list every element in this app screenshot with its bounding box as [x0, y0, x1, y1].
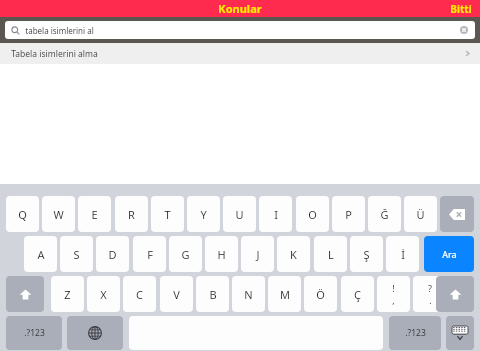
button[interactable]: Ö	[304, 276, 337, 312]
button[interactable]: H	[205, 236, 238, 272]
staticText: C	[136, 287, 143, 302]
staticText: A	[37, 247, 45, 262]
staticText: Konular	[218, 1, 262, 16]
button[interactable]: V	[160, 276, 193, 312]
button[interactable]: K	[277, 236, 310, 272]
button[interactable]: F	[133, 236, 166, 272]
button[interactable]: S	[60, 236, 93, 272]
staticText: Ü	[416, 207, 425, 222]
button[interactable]: L	[314, 236, 347, 272]
button[interactable]: J	[241, 236, 274, 272]
staticText: U	[235, 207, 244, 222]
button[interactable]: U	[223, 196, 256, 232]
staticText: !	[392, 282, 395, 294]
button[interactable]: Y	[187, 196, 220, 232]
staticText: E	[91, 207, 98, 222]
staticText: F	[147, 247, 153, 262]
staticText: I	[274, 207, 278, 222]
staticText: Bitti	[450, 2, 472, 16]
button[interactable]: Ğ	[368, 196, 401, 232]
button[interactable]: Ara	[424, 236, 474, 272]
button[interactable]: A	[24, 236, 57, 272]
staticText: Ğ	[380, 207, 389, 222]
button[interactable]: B	[196, 276, 229, 312]
button[interactable]: X	[87, 276, 120, 312]
staticText: ?	[428, 282, 432, 294]
staticText: Z	[64, 287, 71, 302]
staticText: Q	[18, 207, 27, 222]
staticText: V	[173, 287, 180, 302]
button[interactable]: !	[377, 276, 410, 312]
staticText: P	[345, 207, 352, 222]
button[interactable]: Hide keyboard	[446, 316, 474, 350]
button[interactable]: Backspace	[440, 196, 474, 232]
button[interactable]: Numbers	[6, 316, 62, 350]
staticText: Ç	[354, 287, 361, 302]
button[interactable]: Ş	[350, 236, 383, 272]
staticText: O	[308, 207, 317, 222]
staticText: S	[73, 247, 80, 262]
button[interactable]: T	[151, 196, 184, 232]
button[interactable]: Z	[51, 276, 84, 312]
button[interactable]: M	[268, 276, 301, 312]
staticText: T	[164, 207, 171, 222]
staticText: G	[181, 247, 190, 262]
button[interactable]: Clear text	[459, 25, 469, 35]
button[interactable]: Q	[6, 196, 39, 232]
staticText: .	[429, 294, 432, 306]
staticText: M	[280, 287, 290, 302]
button[interactable]: D	[96, 236, 129, 272]
button[interactable]: O	[296, 196, 329, 232]
staticText: .?123	[24, 327, 45, 339]
staticText: B	[209, 287, 217, 302]
staticText: K	[290, 247, 297, 262]
button[interactable]: E	[78, 196, 111, 232]
staticText: N	[244, 287, 253, 302]
button[interactable]: Ç	[341, 276, 374, 312]
button[interactable]: R	[115, 196, 148, 232]
button[interactable]: N	[232, 276, 265, 312]
button[interactable]: Shift	[6, 276, 44, 312]
button[interactable]: Bitti	[442, 2, 480, 16]
staticText: Ara	[442, 248, 457, 260]
button[interactable]: Ü	[404, 196, 437, 232]
button[interactable]: W	[42, 196, 75, 232]
staticText: Y	[200, 207, 207, 222]
staticText: Tabela isimlerini alma	[11, 48, 98, 60]
staticText: L	[328, 247, 334, 262]
staticText: .?123	[405, 327, 426, 339]
button[interactable]: Numbers	[389, 316, 441, 350]
staticText: D	[108, 247, 117, 262]
button[interactable]: P	[332, 196, 365, 232]
staticText: W	[53, 207, 64, 222]
button[interactable]: Change language	[67, 316, 123, 350]
button[interactable]: İ	[386, 236, 419, 272]
staticText: H	[217, 247, 226, 262]
staticText: tabela isimlerini al	[25, 25, 94, 36]
staticText: Ö	[316, 287, 325, 302]
button[interactable]: C	[123, 276, 156, 312]
staticText: İ	[401, 247, 405, 262]
button[interactable]: Shift	[436, 276, 474, 312]
button[interactable]: tabela isimlerini al	[5, 21, 475, 39]
button[interactable]: ?	[413, 276, 446, 312]
staticText: X	[100, 287, 107, 302]
button[interactable]: Tabela isimlerini alma	[0, 43, 480, 64]
staticText: J	[256, 247, 260, 262]
staticText: Ş	[363, 247, 370, 262]
button[interactable]: I	[259, 196, 292, 232]
staticText: R	[128, 207, 135, 222]
staticText: ,	[392, 294, 395, 306]
button[interactable]: G	[169, 236, 202, 272]
